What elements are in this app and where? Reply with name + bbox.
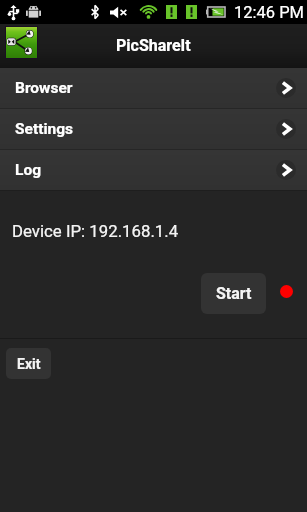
button[interactable]: Exit <box>6 348 51 379</box>
staticText: Exit <box>17 356 41 372</box>
button[interactable]: Settings <box>0 109 307 149</box>
button[interactable]: Browser <box>0 68 307 108</box>
button[interactable]: Start <box>201 273 266 314</box>
staticText: Device IP: 192.168.1.4 <box>12 221 179 241</box>
staticText: Log <box>15 161 41 179</box>
staticText: Settings <box>15 120 74 138</box>
staticText: Browser <box>15 79 73 97</box>
staticText: PicShareIt <box>116 36 191 55</box>
staticText: Start <box>216 284 252 303</box>
staticText: 12:46 PM <box>234 3 304 22</box>
button[interactable]: Log <box>0 150 307 190</box>
button[interactable]: App icon <box>5 26 38 59</box>
